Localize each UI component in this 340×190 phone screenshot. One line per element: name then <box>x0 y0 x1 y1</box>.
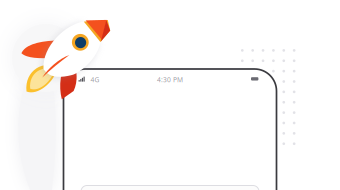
staticText: 4:30 PM <box>157 75 183 84</box>
staticText: 4G <box>90 75 99 84</box>
